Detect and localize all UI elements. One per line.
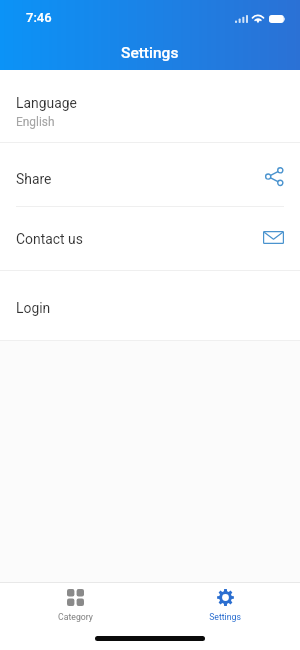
other: Category: [67, 589, 84, 606]
button[interactable]: Language: [0, 70, 300, 142]
other: Settings: [217, 589, 234, 606]
staticText: Login: [16, 300, 51, 316]
staticText: Language: [16, 95, 77, 111]
staticText: 7:46: [26, 10, 52, 25]
staticText: English: [16, 115, 55, 129]
button[interactable]: Share: [0, 143, 300, 206]
button[interactable]: Contact us: [0, 207, 300, 270]
button[interactable]: Settings: [150, 583, 300, 650]
other: Share: [265, 167, 284, 186]
staticText: Category: [58, 612, 93, 622]
other: Contact us: [263, 228, 284, 247]
button[interactable]: Category: [0, 583, 150, 650]
staticText: Share: [16, 171, 52, 187]
staticText: Settings: [121, 44, 179, 62]
staticText: Settings: [209, 612, 241, 622]
button[interactable]: Login: [0, 271, 300, 340]
staticText: Contact us: [16, 231, 83, 247]
